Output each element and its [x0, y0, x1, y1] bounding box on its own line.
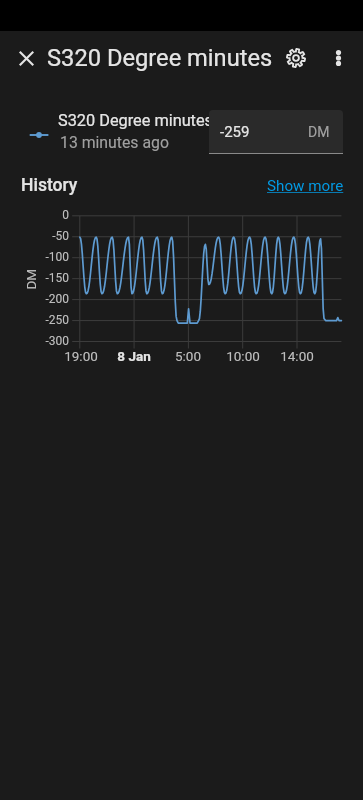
- staticText: 14:00: [267, 348, 327, 364]
- button[interactable]: More options: [316, 38, 356, 78]
- staticText: -259: [220, 123, 250, 141]
- button[interactable]: Close: [8, 40, 44, 76]
- button[interactable]: Settings: [276, 38, 316, 78]
- staticText: -200: [33, 292, 69, 306]
- staticText: 0: [33, 208, 69, 222]
- staticText: DM: [308, 124, 330, 140]
- staticText: S320 Degree minutes: [47, 44, 273, 72]
- staticText: Show more: [267, 177, 344, 195]
- staticText: 13 minutes ago: [60, 133, 169, 152]
- staticText: S320 Degree minutes: [58, 111, 214, 130]
- button[interactable]: -259: [209, 110, 343, 154]
- staticText: -150: [33, 271, 69, 285]
- staticText: 8 Jan: [104, 348, 164, 364]
- staticText: DM: [22, 268, 38, 289]
- staticText: 5:00: [158, 348, 218, 364]
- staticText: History: [21, 175, 78, 196]
- staticText: -250: [33, 313, 69, 327]
- staticText: 19:00: [51, 348, 111, 364]
- staticText: -300: [33, 334, 69, 348]
- staticText: -100: [33, 250, 69, 264]
- staticText: -50: [33, 229, 69, 243]
- staticText: 10:00: [213, 348, 273, 364]
- button[interactable]: Show more: [267, 177, 344, 195]
